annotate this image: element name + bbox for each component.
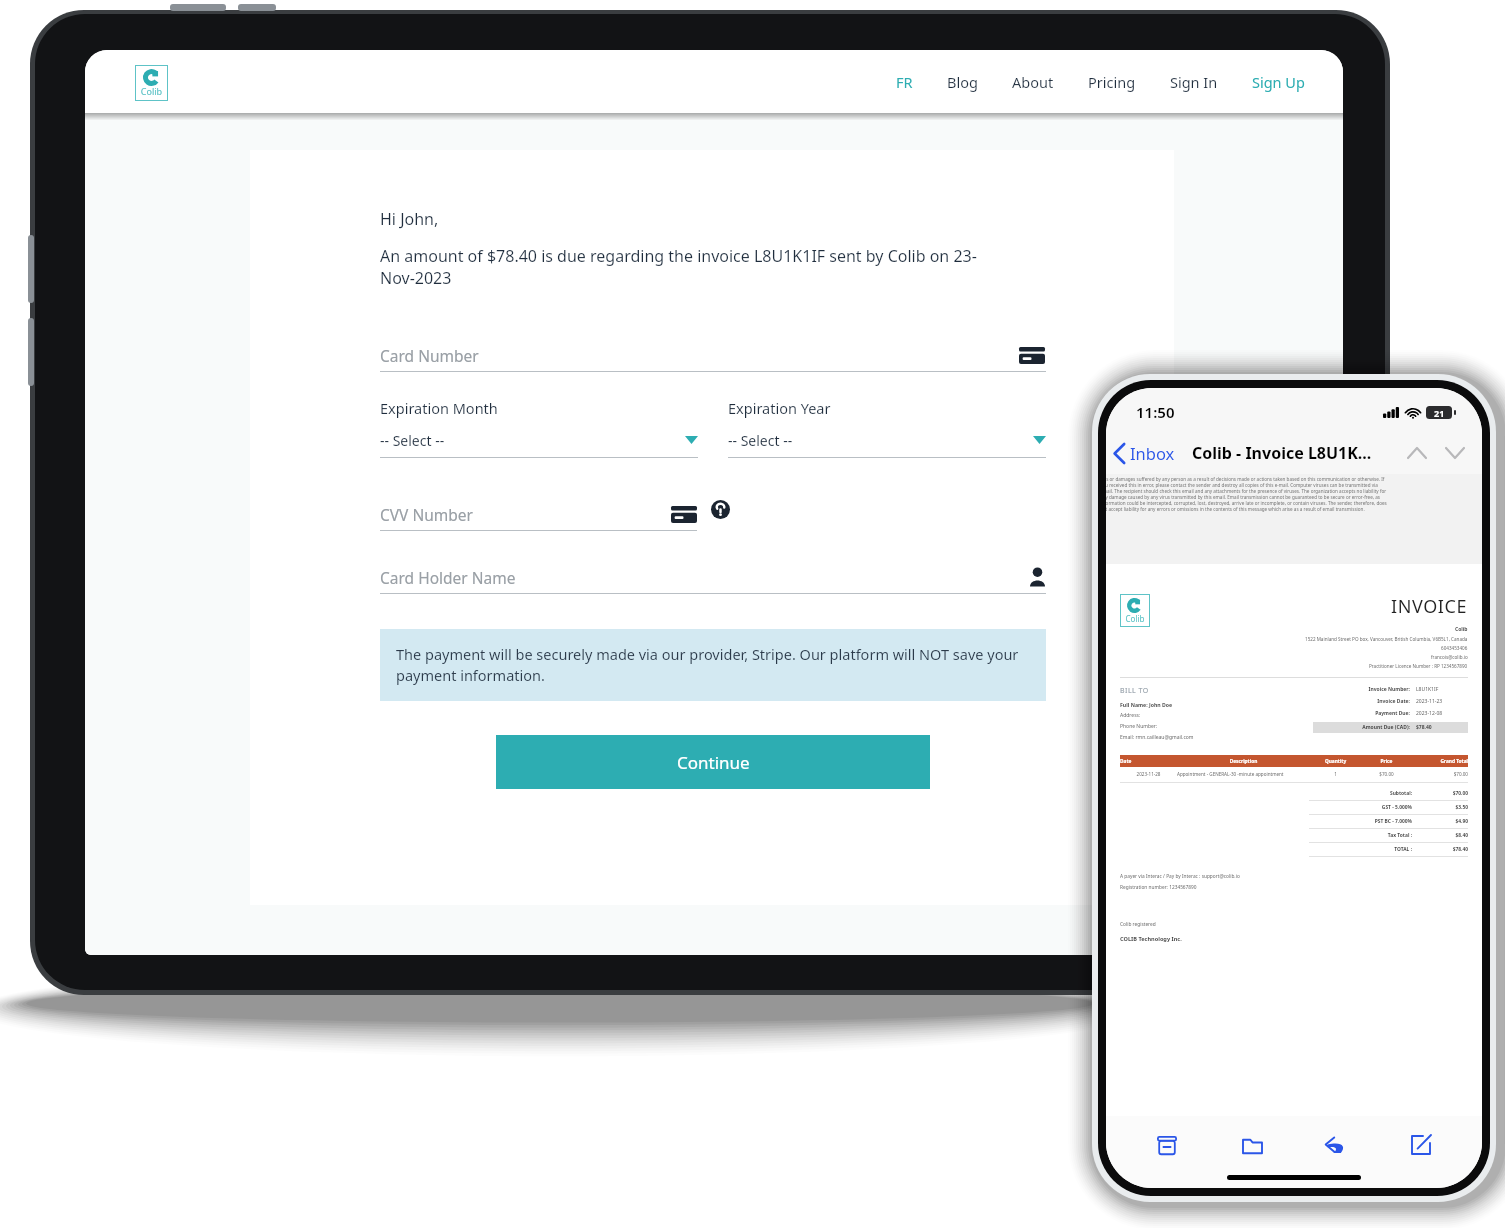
staticText: $78.40 <box>1416 724 1468 731</box>
staticText: Full Name: John Doe <box>1120 701 1173 708</box>
staticText: francois@colib.io <box>1431 654 1468 660</box>
staticText: Card Holder Name <box>380 567 1029 588</box>
staticText: 2023-11-23 <box>1416 698 1468 705</box>
staticText: 2023-11-28 <box>1120 771 1177 777</box>
button[interactable]: Pricing <box>1084 66 1140 98</box>
staticText: $78.40 <box>1412 846 1468 853</box>
staticText: Card Number <box>380 345 1019 366</box>
staticText: Invoice Date: <box>1313 698 1410 705</box>
staticText: Address: <box>1120 712 1141 719</box>
button[interactable]: Previous message <box>1404 440 1430 466</box>
button[interactable]: Expiration Year <box>728 398 1046 458</box>
staticText: 21 <box>1434 407 1445 419</box>
button[interactable]: CVV Number <box>380 498 697 531</box>
staticText: Phone Number: <box>1120 723 1158 730</box>
staticText: Sign Up <box>1252 72 1305 92</box>
staticText: INVOICE <box>1391 594 1468 619</box>
button[interactable]: Next message <box>1442 440 1468 466</box>
button[interactable]: Inbox <box>1114 442 1175 464</box>
staticText: Hi John, <box>380 208 439 230</box>
staticText: The payment will be securely made via ou… <box>396 644 1030 686</box>
staticText: $8.40 <box>1412 832 1468 839</box>
staticText: $3.50 <box>1412 804 1468 811</box>
staticText: 1 <box>1310 771 1361 777</box>
button[interactable]: Colib home <box>135 65 168 101</box>
button[interactable]: Move to folder <box>1229 1122 1275 1168</box>
staticText: any damage caused by any virus transmitt… <box>1106 494 1380 500</box>
button[interactable]: Compose <box>1398 1122 1444 1168</box>
staticText: Grand Total <box>1412 758 1468 765</box>
button[interactable]: CVV help <box>709 498 731 520</box>
staticText: A payer via Interac / Pay by Interac : s… <box>1120 873 1240 880</box>
staticText: Pricing <box>1088 72 1136 92</box>
button[interactable]: Blog <box>943 66 982 98</box>
staticText: Colib <box>1123 613 1147 624</box>
staticText: Invoice Number: <box>1313 686 1410 693</box>
staticText: loss or damages suffered by any person a… <box>1106 476 1385 482</box>
staticText: Payment Due: <box>1313 710 1410 717</box>
button[interactable]: Sign In <box>1166 66 1222 98</box>
staticText: Description <box>1177 758 1310 765</box>
staticText: 11:50 <box>1136 402 1175 422</box>
staticText: 1522 Mainland Street PO box, Vancouver, … <box>1305 636 1468 642</box>
staticText: Price <box>1361 758 1412 765</box>
staticText: Registration number: 1234567890 <box>1120 884 1197 891</box>
button[interactable]: Reply <box>1313 1122 1359 1168</box>
staticText: CVV Number <box>380 504 671 525</box>
staticText: Continue <box>677 751 750 774</box>
button[interactable]: Archive <box>1144 1122 1190 1168</box>
staticText: FR <box>896 72 913 92</box>
staticText: 6043453406 <box>1441 645 1468 651</box>
staticText: -- Select -- <box>728 431 1033 450</box>
staticText: 2023-12-08 <box>1416 710 1468 717</box>
staticText: not accept liability for any errors or o… <box>1106 506 1365 512</box>
staticText: PST BC - 7.000% <box>1310 818 1412 825</box>
button[interactable]: Card Holder Name <box>380 561 1046 594</box>
staticText: TOTAL : <box>1310 846 1412 853</box>
button[interactable]: About <box>1008 66 1058 98</box>
button[interactable]: Expiration Month <box>380 398 698 458</box>
staticText: Sign In <box>1170 72 1218 92</box>
staticText: $70.00 <box>1412 771 1468 777</box>
staticText: Colib registered <box>1120 921 1156 928</box>
staticText: Tax Total : <box>1310 832 1412 839</box>
staticText: Colib <box>139 85 164 97</box>
staticText: Colib <box>1455 626 1468 633</box>
staticText: $70.00 <box>1361 771 1412 777</box>
staticText: Amount Due (CAD): <box>1313 724 1410 731</box>
staticText: information could be intercepted, corrup… <box>1106 500 1387 506</box>
staticText: -- Select -- <box>380 431 685 450</box>
staticText: Practitioner Licence Number : RP 1234567… <box>1369 663 1468 669</box>
staticText: BILL TO <box>1120 686 1149 696</box>
staticText: COLIB Technology Inc. <box>1120 935 1182 943</box>
button[interactable]: Card Number <box>380 339 1046 372</box>
button[interactable]: Continue <box>496 735 930 789</box>
staticText: An amount of $78.40 is due regarding the… <box>380 245 1046 289</box>
staticText: Inbox <box>1130 442 1175 464</box>
staticText: Email: rmn.cailleau@gmail.com <box>1120 734 1194 741</box>
staticText: Colib - Invoice L8U1K... <box>1192 442 1372 464</box>
staticText: $4.90 <box>1412 818 1468 825</box>
staticText: L8U1K1IF <box>1416 686 1468 693</box>
staticText: $70.00 <box>1412 790 1468 797</box>
staticText: email. The recipient should check this e… <box>1106 488 1387 494</box>
staticText: Quantity <box>1310 758 1361 765</box>
button[interactable]: Sign Up <box>1248 66 1309 98</box>
button[interactable]: FR <box>892 66 917 98</box>
staticText: GST - 5.000% <box>1310 804 1412 811</box>
staticText: you received this in error, please conta… <box>1106 482 1378 488</box>
staticText: Appointment - GENERAL-30 -minute appoint… <box>1177 771 1310 777</box>
staticText: Expiration Year <box>728 398 831 418</box>
staticText: Blog <box>947 72 978 92</box>
staticText: About <box>1012 72 1054 92</box>
staticText: Expiration Month <box>380 398 498 418</box>
staticText: Date <box>1120 758 1177 765</box>
staticText: Subtotal: <box>1310 790 1412 797</box>
